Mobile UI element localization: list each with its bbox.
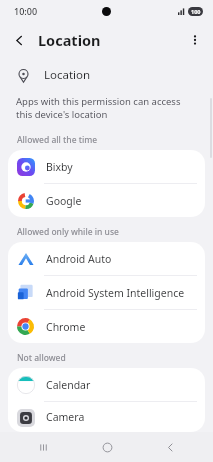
staticText: Chrome [46, 320, 86, 334]
staticText: Android Auto [46, 252, 112, 266]
button[interactable]: Bixby [8, 150, 205, 183]
button[interactable]: Google [8, 184, 205, 217]
staticText: 10:00 [14, 5, 38, 17]
staticText: Bixby [46, 160, 73, 174]
staticText: Apps with this permission can access thi… [16, 95, 189, 121]
button[interactable]: Home [87, 432, 127, 462]
staticText: 100 [191, 8, 201, 15]
staticText: Not allowed [17, 352, 213, 364]
staticText: Camera [46, 410, 85, 424]
staticText: Google [46, 194, 82, 208]
staticText: Location [38, 30, 101, 50]
button[interactable]: Recent apps [23, 432, 63, 462]
staticText: Location [44, 67, 91, 83]
button[interactable]: Navigate up [6, 27, 32, 53]
button[interactable]: Chrome [8, 310, 205, 343]
button[interactable]: Calendar [8, 368, 205, 401]
button[interactable]: More options [182, 27, 208, 53]
staticText: Allowed only while in use [17, 226, 213, 238]
button[interactable]: Android System Intelligence [8, 276, 205, 309]
staticText: Allowed all the time [17, 134, 213, 146]
button[interactable]: Back [150, 432, 190, 462]
staticText: Android System Intelligence [46, 286, 185, 300]
button[interactable]: Android Auto [8, 242, 205, 275]
button[interactable]: Camera [8, 402, 205, 432]
staticText: Calendar [46, 378, 91, 392]
